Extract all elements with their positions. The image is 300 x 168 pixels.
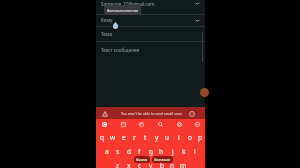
staticText: f — [138, 147, 141, 156]
staticText: r — [133, 133, 136, 142]
button[interactable]: f — [134, 144, 145, 158]
staticText: z — [116, 161, 120, 168]
button[interactable]: g — [145, 144, 156, 158]
staticText: d — [127, 147, 131, 156]
staticText: q — [100, 133, 104, 142]
staticText: m — [180, 161, 187, 168]
button[interactable]: r — [129, 130, 140, 144]
button[interactable]: n — [167, 158, 178, 168]
staticText: k — [182, 147, 186, 156]
button[interactable]: d — [123, 144, 134, 158]
staticText: n — [170, 161, 175, 168]
button[interactable]: z — [112, 158, 123, 168]
button[interactable]: v — [145, 158, 156, 168]
button[interactable]: t — [140, 130, 151, 144]
button[interactable]: больше — [152, 156, 173, 163]
staticText: h — [159, 147, 164, 156]
staticText: l — [194, 147, 196, 156]
button[interactable]: Кому — [96, 15, 205, 26]
button[interactable]: Search — [156, 120, 165, 129]
button[interactable]: u — [162, 130, 173, 144]
button[interactable]: j — [167, 144, 178, 158]
button[interactable]: p — [195, 130, 205, 144]
staticText: i — [178, 133, 180, 142]
button[interactable]: i — [173, 130, 184, 144]
staticText: y — [155, 133, 159, 142]
button[interactable]: Compose — [200, 88, 209, 97]
staticText: s — [116, 147, 120, 156]
staticText: w — [110, 133, 116, 142]
staticText: p — [198, 133, 202, 142]
staticText: g — [149, 147, 153, 156]
button[interactable]: w — [107, 130, 118, 144]
staticText: o — [188, 133, 192, 142]
button[interactable]: была — [134, 156, 150, 163]
staticText: You won't be able to send email soon — [121, 111, 183, 116]
button[interactable]: You won't be able to send email soon — [96, 107, 205, 119]
button[interactable]: Автозаполнение — [104, 5, 141, 15]
button[interactable]: s — [112, 144, 123, 158]
button[interactable]: l — [189, 144, 200, 158]
button[interactable]: Google search — [100, 120, 109, 129]
button[interactable]: e — [118, 130, 129, 144]
staticText: a — [105, 147, 109, 156]
button[interactable]: k — [178, 144, 189, 158]
button[interactable]: a — [101, 144, 112, 158]
button[interactable]: GIF — [137, 120, 146, 129]
staticText: x — [127, 161, 131, 168]
button[interactable]: y — [151, 130, 162, 144]
button[interactable]: Someone.17@gmail.com — [96, 0, 205, 14]
staticText: Someone.17@gmail.com — [101, 1, 155, 7]
button[interactable]: m — [178, 158, 189, 168]
staticText: Тема — [101, 31, 112, 37]
staticText: v — [149, 161, 153, 168]
button[interactable]: x — [123, 158, 134, 168]
button[interactable]: Settings — [175, 120, 184, 129]
button[interactable]: Stickers — [119, 120, 128, 129]
button[interactable]: h — [156, 144, 167, 158]
staticText: b — [160, 161, 164, 168]
button[interactable]: o — [184, 130, 195, 144]
staticText: c — [138, 161, 142, 168]
staticText: u — [165, 133, 170, 142]
button[interactable]: c — [134, 158, 145, 168]
staticText: Кому — [101, 17, 113, 23]
staticText: j — [172, 147, 174, 156]
button[interactable]: Тема — [96, 26, 205, 40]
staticText: Автозаполнение — [107, 8, 139, 13]
staticText: t — [144, 133, 147, 142]
staticText: Текст сообщения — [101, 47, 140, 53]
button[interactable]: q — [96, 130, 107, 144]
staticText: была — [136, 157, 148, 163]
staticText: больше — [154, 157, 171, 163]
staticText: e — [122, 133, 126, 142]
button[interactable]: b — [156, 158, 167, 168]
button[interactable]: More options — [193, 120, 202, 129]
